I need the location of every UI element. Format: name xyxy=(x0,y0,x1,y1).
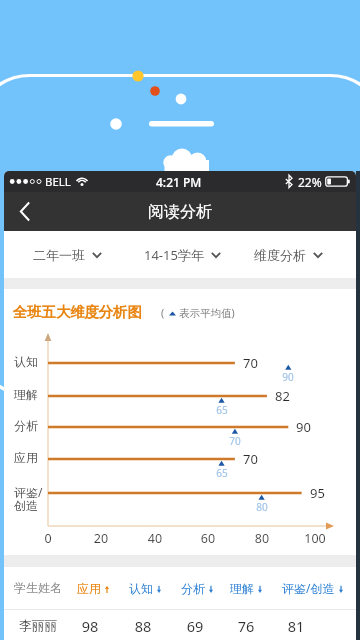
staticText: 60 xyxy=(194,530,222,547)
staticText: 应用 xyxy=(14,450,46,465)
staticText: 20 xyxy=(87,530,115,547)
staticText: 70 xyxy=(243,450,258,468)
button[interactable]: 二年一班 xyxy=(31,231,104,278)
button[interactable]: 维度分析 xyxy=(230,231,346,278)
staticText: 65 xyxy=(212,466,232,480)
staticText: 88 xyxy=(128,616,158,636)
staticText: 评鉴/ 创造 xyxy=(14,484,46,514)
staticText: 65 xyxy=(212,403,232,417)
button[interactable]: 评鉴/创造 xyxy=(274,567,350,609)
staticText: 90 xyxy=(278,370,298,384)
staticText: 100 xyxy=(301,530,329,547)
staticText: 李丽丽 xyxy=(19,618,58,634)
staticText: BELL xyxy=(45,174,71,190)
staticText: 4:21 PM xyxy=(156,174,202,190)
button[interactable]: 认知 xyxy=(122,567,168,609)
staticText: 95 xyxy=(310,484,325,502)
staticText: 评鉴/创造 xyxy=(282,580,335,596)
staticText: 81 xyxy=(281,616,311,636)
staticText: 分析 xyxy=(181,581,205,596)
staticText: 70 xyxy=(225,434,245,448)
button[interactable]: 应用 xyxy=(70,567,116,609)
staticText: 理解 xyxy=(14,387,46,402)
staticText: 82 xyxy=(275,387,290,405)
button[interactable]: 分析 xyxy=(174,567,220,609)
staticText: 98 xyxy=(75,616,105,636)
staticText: 维度分析 xyxy=(254,247,306,263)
staticText: 22% xyxy=(298,174,322,190)
staticText: 90 xyxy=(296,418,311,436)
staticText: 0 xyxy=(34,530,62,547)
staticText: 69 xyxy=(180,616,210,636)
staticText: 70 xyxy=(243,354,258,372)
staticText: 阅读分析 xyxy=(148,202,212,222)
staticText: 76 xyxy=(231,616,261,636)
staticText: ( xyxy=(161,306,165,320)
staticText: 理解 xyxy=(230,581,254,596)
staticText: 二年一班 xyxy=(33,247,85,263)
staticText: 40 xyxy=(141,530,169,547)
staticText: 全班五大维度分析图 xyxy=(13,303,142,321)
button[interactable]: 理解 xyxy=(223,567,269,609)
staticText: 14-15学年 xyxy=(144,246,204,264)
staticText: 认知 xyxy=(14,354,46,369)
button[interactable]: Back xyxy=(4,192,46,231)
staticText: 80 xyxy=(252,500,272,514)
staticText: 应用 xyxy=(77,581,101,596)
staticText: 分析 xyxy=(14,418,46,433)
staticText: 学生姓名 xyxy=(14,580,62,595)
staticText: 认知 xyxy=(129,581,153,596)
button[interactable]: 14-15学年 xyxy=(124,231,240,278)
staticText: 表示平均值) xyxy=(179,306,235,320)
staticText: 80 xyxy=(248,530,276,547)
